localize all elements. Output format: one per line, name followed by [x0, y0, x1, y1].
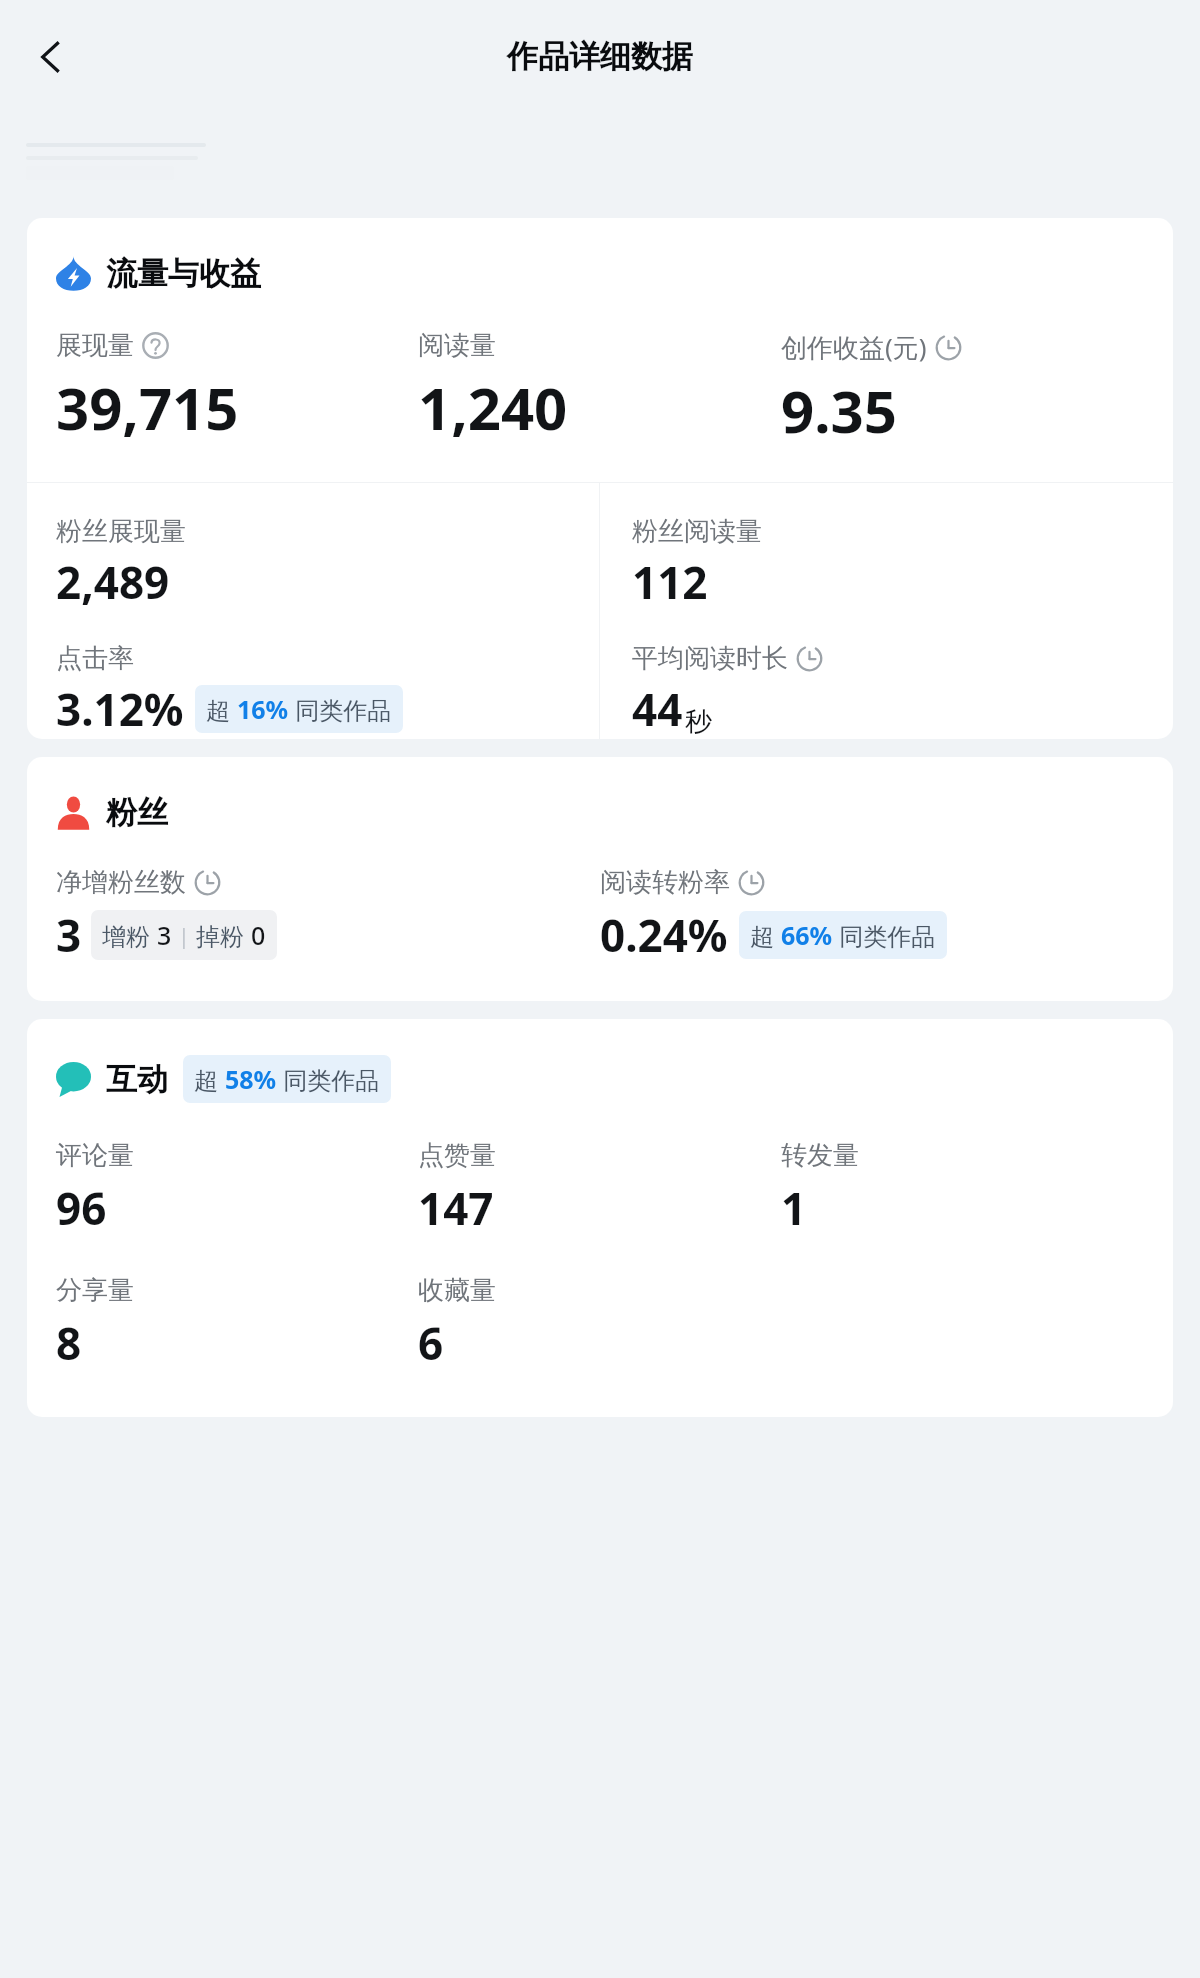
staticText: 8: [56, 1313, 82, 1373]
staticText: 净增粉丝数: [56, 866, 186, 899]
staticText: 同类作品: [277, 1063, 380, 1096]
staticText: 流量与收益: [106, 254, 261, 293]
staticText: 作品详细数据: [507, 37, 693, 76]
staticText: 掉粉: [196, 919, 251, 952]
staticText: 点击率: [56, 642, 134, 675]
staticText: 9.35: [781, 371, 897, 450]
staticText: 分享量: [56, 1274, 134, 1307]
button[interactable]: 超: [183, 1055, 391, 1103]
staticText: 同类作品: [289, 693, 392, 726]
staticText: 44: [632, 679, 683, 739]
staticText: 点赞量: [418, 1139, 496, 1172]
staticText: 增粉: [102, 919, 157, 952]
button[interactable]: 流量与收益: [56, 254, 261, 293]
staticText: 超: [750, 919, 781, 952]
staticText: 平均阅读时长: [632, 642, 788, 675]
button[interactable]: 粉丝: [56, 793, 168, 832]
staticText: 粉丝: [106, 793, 168, 832]
staticText: 1: [781, 1178, 807, 1238]
staticText: 66%: [781, 918, 833, 952]
staticText: 收藏量: [418, 1274, 496, 1307]
staticText: 秒: [685, 705, 712, 739]
staticText: 0.24%: [600, 905, 728, 965]
staticText: 6: [418, 1313, 444, 1373]
button[interactable]: 互动: [56, 1060, 168, 1099]
staticText: 3: [157, 918, 172, 952]
staticText: 3: [56, 905, 82, 965]
button[interactable]: Back: [18, 24, 84, 90]
staticText: |: [172, 920, 196, 950]
button[interactable]: 超: [739, 911, 947, 959]
button[interactable]: 增粉: [91, 910, 277, 960]
staticText: 16%: [237, 692, 289, 726]
staticText: 粉丝展现量: [56, 515, 186, 548]
staticText: 互动: [106, 1060, 168, 1099]
staticText: 阅读量: [418, 329, 496, 362]
button[interactable]: 超: [195, 685, 403, 733]
staticText: 评论量: [56, 1139, 134, 1172]
staticText: 96: [56, 1178, 107, 1238]
staticText: 粉丝阅读量: [632, 515, 762, 548]
staticText: 超: [206, 693, 237, 726]
staticText: 0: [251, 918, 266, 952]
staticText: 同类作品: [833, 919, 936, 952]
staticText: 112: [632, 552, 708, 612]
staticText: 1,240: [418, 368, 568, 447]
staticText: 39,715: [56, 368, 239, 447]
staticText: 58%: [225, 1062, 277, 1096]
staticText: 147: [418, 1178, 494, 1238]
staticText: 2,489: [56, 552, 170, 612]
staticText: 创作收益(元): [781, 329, 927, 365]
staticText: 3.12%: [56, 679, 184, 739]
staticText: 阅读转粉率: [600, 866, 730, 899]
staticText: 超: [194, 1063, 225, 1096]
staticText: 转发量: [781, 1139, 859, 1172]
staticText: 展现量: [56, 329, 134, 362]
